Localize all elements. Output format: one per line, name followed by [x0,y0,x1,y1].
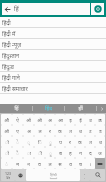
staticText: औ [4,117,9,123]
button[interactable]: हिंदी [0,17,106,28]
staticText: ि [38,139,42,145]
button[interactable]: ो [1,136,12,147]
button[interactable]: उ [85,114,95,125]
button[interactable]: हिंदी न्यूज़ [0,39,106,50]
staticText: ् [27,139,30,145]
button[interactable]: हिंदी में [0,28,106,39]
button[interactable]: हीं [65,104,96,113]
button[interactable]: हिंदुस्तान [0,50,106,61]
button[interactable]: अ [23,125,34,136]
button[interactable]: ल [45,158,55,169]
button[interactable]: अ [45,114,55,125]
staticText: क [78,139,82,145]
staticText: य [69,161,72,167]
button[interactable]: हिं [0,104,32,113]
staticText: ी [38,150,42,156]
staticText: 123 [5,171,12,176]
staticText: ं [5,161,8,167]
button[interactable]: ह [65,147,75,158]
staticText: हिंदुत्व [2,63,14,70]
button[interactable]: Search [90,169,105,181]
button[interactable]: आ [55,114,65,125]
button[interactable]: हिंदी समाचार [0,83,106,94]
button[interactable]: क [55,125,65,136]
staticText: ऑ [26,117,31,123]
button[interactable]: त [65,125,75,136]
button[interactable]: ज [95,147,105,158]
button[interactable]: द [85,147,95,158]
button[interactable]: ब [55,147,65,158]
staticText: स [58,161,62,167]
staticText: हिंदी में [2,30,16,37]
button[interactable]: य [65,158,75,169]
button[interactable]: हिंद [33,104,64,113]
staticText: ऒ [37,117,42,123]
button[interactable]: ट [85,125,95,136]
button[interactable]: ी [34,147,45,158]
button[interactable]: ै [12,147,23,158]
button[interactable]: , [80,169,90,181]
button[interactable]: ऒ [34,114,45,125]
button[interactable] [95,158,105,169]
staticText: क [58,128,62,134]
button[interactable]: र [65,136,75,147]
button[interactable]: ू [45,147,55,158]
button[interactable]: ई [75,114,85,125]
button[interactable]: ष [75,158,85,169]
button[interactable]: ऐ [12,114,23,125]
button[interactable]: Space [26,169,80,181]
staticText: व [38,161,41,167]
button[interactable]: प [55,136,65,147]
button[interactable]: Emoji [15,169,26,181]
button[interactable]: ् [23,136,34,147]
staticText: ट [89,128,92,134]
button[interactable]: व [34,158,45,169]
button[interactable]: म [12,158,23,169]
button[interactable]: त [85,136,95,147]
button[interactable]: More suggestions [97,104,106,113]
staticText: हिंदी गाने [2,74,20,81]
staticText: . [84,175,86,180]
button[interactable]: े [12,136,23,147]
button[interactable]: ऊ [95,114,105,125]
button[interactable]: च [95,136,105,147]
staticText: ओ [4,128,9,134]
button[interactable]: ए [12,125,23,136]
staticText: !#१ [6,176,11,180]
staticText: च [79,128,82,134]
button[interactable]: ऑ [23,114,34,125]
button[interactable]: औ [1,114,12,125]
button[interactable]: ं [1,158,12,169]
staticText: ु [49,139,52,145]
button[interactable]: ग [75,147,85,158]
button[interactable]: ु [45,136,55,147]
button[interactable]: न [23,158,34,169]
button[interactable]: च [75,125,85,136]
staticText: हिंदी समाचार [2,85,28,92]
staticText: आ [58,117,63,123]
button[interactable]: र [45,125,55,136]
button[interactable]: ा [23,147,34,158]
button[interactable]: ओ [1,125,12,136]
staticText: र [69,139,71,145]
staticText: न [27,161,30,167]
staticText: उ [89,117,92,123]
button[interactable]: Back [2,3,90,15]
button[interactable]: ि [34,136,45,147]
button[interactable]: हिंदी गाने [0,72,106,83]
staticText: र [49,128,51,134]
button[interactable]: ल [34,125,45,136]
button[interactable]: क [75,136,85,147]
staticText: ल [38,128,42,134]
button[interactable]: ड [95,125,105,136]
button[interactable]: Back [2,4,13,15]
button[interactable]: Clear [91,3,104,15]
button[interactable]: इ [65,114,75,125]
button[interactable]: ॉ [1,147,12,158]
button[interactable]: हिंदुत्व [0,61,106,72]
staticText: ऊ [98,117,102,123]
staticText: ॉ [5,150,9,156]
button[interactable]: स [55,158,65,169]
button[interactable]: Numbers and symbols [1,169,15,181]
button[interactable]: । [85,158,95,169]
